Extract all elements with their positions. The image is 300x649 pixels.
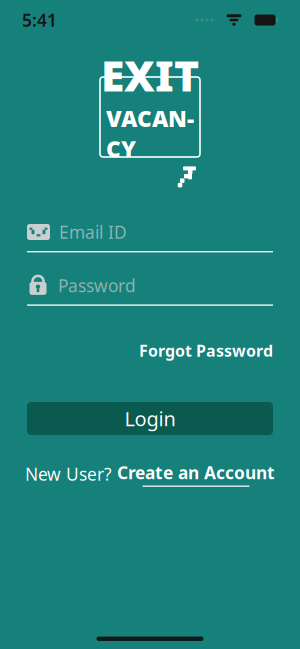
staticText: Login [124, 405, 175, 432]
button[interactable]: Login [27, 402, 273, 435]
staticText: VACANCY [106, 103, 194, 163]
button[interactable]: Forgot Password [139, 336, 273, 365]
staticText: Password [58, 274, 136, 297]
button[interactable]: Email ID [27, 219, 273, 252]
staticText: Email ID [59, 220, 127, 243]
button[interactable]: Create an Account [117, 461, 275, 487]
button[interactable]: Password [27, 272, 273, 306]
staticText: EXIT [101, 47, 199, 103]
staticText: 5:41 [22, 8, 57, 31]
staticText: New User? [25, 462, 117, 485]
staticText: Create an Account [117, 461, 275, 484]
staticText: Forgot Password [139, 340, 273, 361]
